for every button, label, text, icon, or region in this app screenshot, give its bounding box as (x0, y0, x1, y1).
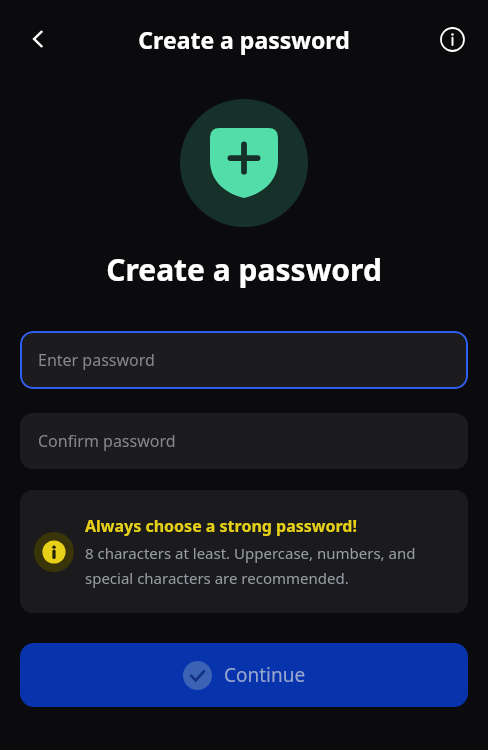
button[interactable]: Back (14, 15, 62, 63)
staticText: Confirm password (38, 430, 176, 452)
staticText: Always choose a strong password! (85, 515, 357, 537)
staticText: Create a password (138, 24, 350, 55)
staticText: Create a password (0, 249, 488, 290)
button[interactable]: Confirm password (20, 413, 468, 469)
staticText: Enter password (38, 349, 155, 371)
button[interactable]: Information (430, 17, 474, 61)
button[interactable]: Continue (20, 643, 468, 707)
button[interactable]: Enter password (20, 331, 468, 389)
staticText: 8 characters at least. Uppercase, number… (85, 543, 450, 588)
staticText: Continue (224, 662, 306, 688)
